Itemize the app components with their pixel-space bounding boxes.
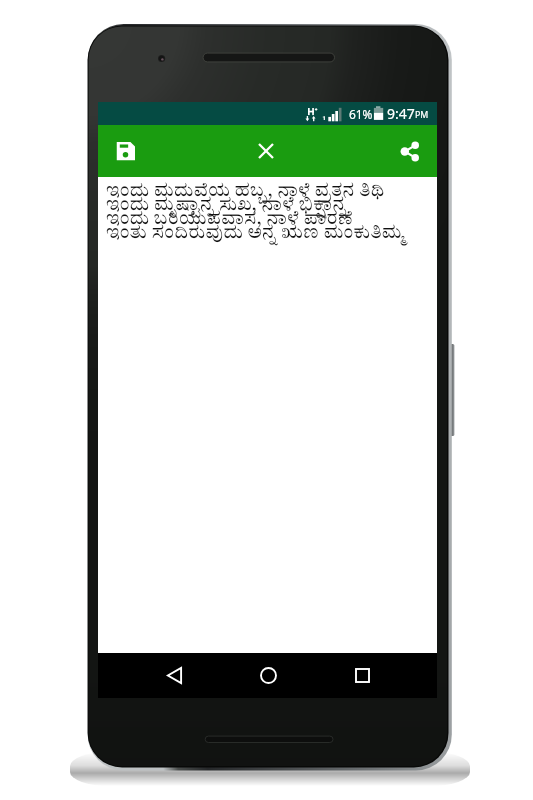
button[interactable]: Home (244, 653, 292, 698)
staticText: ಇಂದು ಮದುವೆಯ ಹಬ್ಬ, ನಾಳೆ ವ್ರತನ ತಿಥಿ (106, 183, 385, 200)
staticText: ಇಂದು ಮೃಷ್ಟಾನ್ನ ಸುಖ, ನಾಳೆ ಭಿಕ್ಷಾನ್ನ (106, 197, 346, 214)
staticText: ಇಂದು ಬರಿಯುಪವಾಸ, ನಾಳೆ ಪಾರಣೆ (106, 211, 353, 228)
staticText: ಇಂತು ಸಂದಿರುವುದು ಅನ್ನ ಋಣ ಮಂಕುತಿಮ್ಮ (106, 225, 405, 242)
staticText: 61% (349, 106, 373, 122)
button[interactable]: Share (386, 127, 434, 175)
button[interactable]: Back (150, 653, 198, 698)
button[interactable]: Save (101, 127, 149, 175)
staticText: PM (415, 109, 429, 121)
button[interactable]: Recents (338, 653, 386, 698)
button[interactable]: Close (242, 127, 290, 175)
staticText: 9:47 (387, 104, 415, 123)
